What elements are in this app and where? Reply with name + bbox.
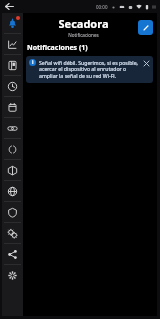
button[interactable]: Developer [2,139,23,159]
button[interactable]: Settings [2,265,23,285]
staticText: i [32,59,34,66]
button[interactable]: Edit [138,20,153,35]
button[interactable]: Notifications [2,13,23,33]
staticText: Notificaciones (1) [27,43,88,53]
button[interactable]: Connections [2,118,23,138]
button[interactable]: Security [2,202,23,222]
staticText: Secadora [58,16,109,31]
button[interactable]: Schedule [2,97,23,117]
button[interactable]: History [2,76,23,96]
button[interactable]: Manual [2,55,23,75]
button[interactable]: Back [3,0,16,13]
button[interactable]: Share [2,244,23,264]
button[interactable]: Network [2,181,23,201]
staticText: Señal wifi débil. Sugerimos, si es posib… [39,59,140,80]
button[interactable]: Dismiss [142,59,150,67]
staticText: 00:00 [96,4,108,10]
staticText: Notificaciones [68,32,99,38]
button[interactable]: Services [2,223,23,243]
button[interactable]: Statistics [2,34,23,54]
button[interactable]: i [26,56,153,83]
button[interactable]: Modules [2,160,23,180]
